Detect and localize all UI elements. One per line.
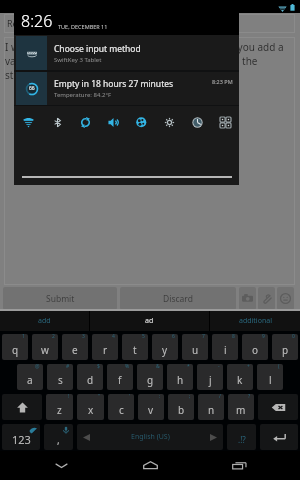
staticText: I want to reply with a note that has a l… (5, 40, 284, 54)
button[interactable]: Brightness (155, 106, 183, 138)
staticText: p (282, 343, 289, 357)
button[interactable]: 4 (92, 334, 118, 360)
staticText: t (133, 343, 137, 357)
staticText: Discard (163, 293, 193, 305)
staticText: 9 (262, 334, 265, 340)
staticText: .!? (238, 434, 246, 445)
staticText: $ (97, 364, 100, 370)
button[interactable]: additional (210, 311, 300, 331)
button[interactable]: + (227, 364, 253, 390)
button[interactable]: English (US) (77, 424, 223, 450)
button[interactable]: 5 (122, 334, 148, 360)
button[interactable]: Attach (258, 287, 275, 310)
staticText: 8 (232, 334, 235, 340)
button[interactable]: Settings (211, 106, 239, 138)
staticText: e (72, 343, 78, 357)
button[interactable]: Recents (211, 451, 267, 480)
button[interactable]: - (197, 364, 223, 390)
staticText: Choose input method (54, 43, 141, 55)
button[interactable]: 9 (242, 334, 268, 360)
button[interactable]: ad (90, 311, 209, 331)
button[interactable]: Choose input method (14, 36, 239, 70)
staticText: % (125, 364, 130, 370)
staticText: + (247, 364, 250, 370)
button[interactable]: Volume (99, 106, 127, 138)
staticText: d (87, 373, 94, 387)
button[interactable]: Enter (260, 424, 298, 450)
button[interactable]: Bluetooth (43, 106, 71, 138)
button[interactable]: & (137, 364, 163, 390)
button[interactable]: Shift (2, 394, 42, 420)
button[interactable]: Location (127, 106, 155, 138)
button[interactable]: Emoji (277, 287, 294, 310)
staticText: ( (278, 364, 280, 370)
staticText: o (252, 343, 259, 357)
staticText: Empty in 18 hours 27 minutes (54, 78, 174, 90)
button[interactable]: Clock (183, 106, 211, 138)
staticText: i (224, 343, 227, 357)
button[interactable]: ; (168, 394, 194, 420)
button[interactable]: # (47, 364, 73, 390)
button[interactable]: ' (108, 394, 134, 420)
staticText: a (27, 373, 33, 387)
button[interactable]: ? (228, 394, 254, 420)
button[interactable]: 7 (182, 334, 208, 360)
button[interactable]: 6 (152, 334, 178, 360)
button[interactable]: 2 (32, 334, 58, 360)
staticText: Reply to note (7, 17, 63, 29)
staticText: 123 (12, 432, 31, 447)
button[interactable]: add (0, 311, 89, 331)
button[interactable]: Home (122, 451, 178, 480)
staticText: 7 (202, 334, 205, 340)
staticText: SwiftKey 3 Tablet (54, 56, 102, 64)
staticText: 5 (142, 334, 145, 340)
staticText: 4 (112, 334, 115, 340)
staticText: - (218, 364, 220, 370)
button[interactable]: @ (17, 364, 43, 390)
button[interactable]: : (138, 394, 164, 420)
button[interactable]: 0 (272, 334, 298, 360)
staticText: ' (129, 394, 131, 400)
button[interactable]: Submit (3, 287, 117, 310)
staticText: ; (189, 394, 191, 400)
button[interactable]: $ (77, 364, 103, 390)
button[interactable]: % (107, 364, 133, 390)
staticText: ? (248, 394, 251, 400)
button[interactable]: 1 (2, 334, 28, 360)
staticText: b (178, 403, 185, 417)
staticText: k (237, 373, 243, 387)
button[interactable]: ( (257, 364, 283, 390)
button[interactable]: Punctuation (227, 424, 256, 450)
button[interactable]: Comma (44, 424, 73, 450)
staticText: TUE, DECEMBER 11 (58, 23, 108, 30)
staticText: statistics that you can see in the summa… (5, 68, 236, 82)
staticText: # (66, 364, 70, 370)
staticText: 1 (22, 334, 25, 340)
button[interactable]: Backspace (258, 394, 298, 420)
staticText: ad (145, 316, 154, 326)
button[interactable]: Sync (71, 106, 99, 138)
button[interactable]: / (198, 394, 224, 420)
button[interactable]: ! (46, 394, 73, 420)
staticText: j (209, 373, 212, 387)
staticText: z (57, 403, 62, 417)
button[interactable]: * (167, 364, 193, 390)
staticText: c (119, 403, 124, 417)
staticText: w (41, 343, 49, 357)
button[interactable]: Numbers (2, 424, 40, 450)
button[interactable]: 66 (14, 72, 239, 105)
button[interactable]: Camera (239, 287, 256, 310)
staticText: x (88, 403, 94, 417)
button[interactable]: 8 (212, 334, 238, 360)
button[interactable]: Discard (120, 287, 236, 310)
staticText: h (177, 373, 184, 387)
button[interactable]: Back (33, 451, 89, 480)
staticText: u (192, 343, 199, 357)
staticText: g (147, 373, 154, 387)
staticText: 0 (292, 334, 295, 340)
button[interactable]: " (77, 394, 104, 420)
staticText: 66 (29, 85, 35, 92)
staticText: " (98, 394, 101, 400)
button[interactable]: 3 (62, 334, 88, 360)
button[interactable]: Wi-Fi (14, 106, 43, 138)
